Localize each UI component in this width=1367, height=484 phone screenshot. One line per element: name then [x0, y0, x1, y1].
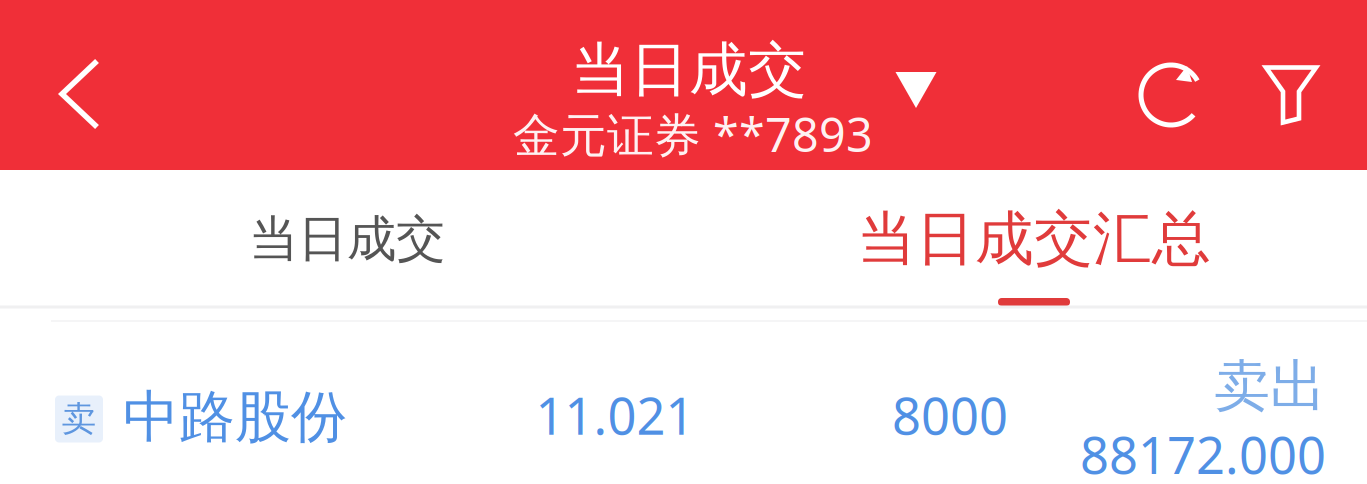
- button[interactable]: Back: [14, 9, 144, 179]
- staticText: 金元证券 **7893: [513, 103, 873, 165]
- button[interactable]: Filter: [1241, 30, 1341, 160]
- button[interactable]: 当日成交汇总: [784, 171, 1284, 307]
- button[interactable]: 当日成交: [137, 171, 557, 307]
- staticText: 卖出: [1214, 352, 1326, 421]
- staticText: 11.021: [535, 381, 694, 449]
- staticText: 当日成交: [249, 209, 445, 269]
- staticText: 当日成交: [571, 34, 807, 106]
- button[interactable]: 卖: [0, 322, 1367, 484]
- button[interactable]: 当日成交: [470, 27, 970, 163]
- button[interactable]: Refresh: [1116, 30, 1226, 160]
- staticText: 卖: [61, 398, 96, 440]
- staticText: 中路股份: [123, 383, 347, 451]
- staticText: 8000: [892, 381, 1008, 449]
- staticText: 当日成交汇总: [857, 203, 1211, 275]
- staticText: 88172.000: [1080, 421, 1326, 484]
